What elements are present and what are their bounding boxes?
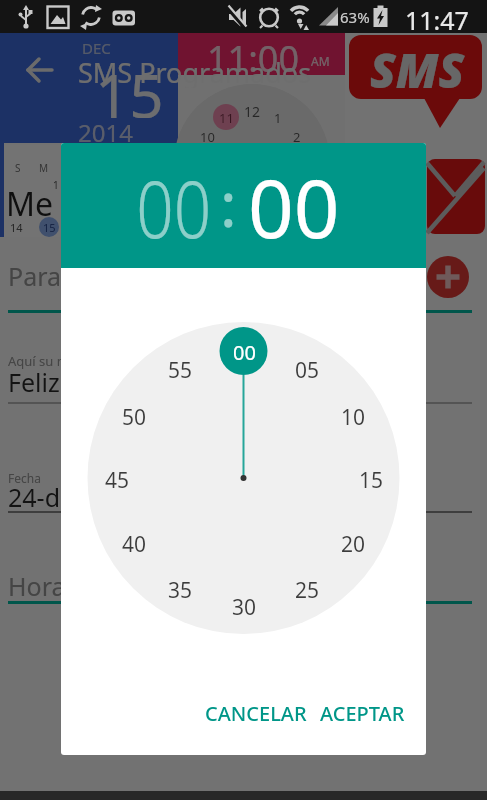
staticText: SMS [370, 38, 465, 92]
staticText: 25 [295, 576, 320, 600]
staticText: 11:00 [207, 34, 300, 72]
staticText: 15 [43, 220, 56, 234]
button[interactable]: ACEPTAR [312, 695, 412, 731]
button[interactable]: CANCELAR [201, 695, 311, 731]
staticText: 55 [168, 356, 193, 380]
staticText: 1 [53, 178, 59, 190]
staticText: Feliz [8, 365, 60, 397]
staticText: 00 [248, 152, 340, 242]
staticText: 11 [219, 109, 234, 125]
staticText: 40 [122, 530, 147, 554]
staticText: 45 [105, 466, 130, 490]
staticText: 00 [136, 152, 212, 242]
staticText: 30 [232, 593, 257, 617]
staticText: S [15, 161, 21, 173]
staticText: 15 [95, 54, 164, 118]
staticText: 63% [340, 7, 370, 27]
staticText: 15 [359, 466, 384, 490]
staticText: 24-d [8, 480, 61, 512]
staticText: SMS Programados [78, 54, 312, 88]
staticText: 35 [168, 576, 193, 600]
staticText: DEC [82, 38, 111, 56]
staticText: M [39, 161, 49, 173]
button[interactable] [427, 256, 469, 298]
staticText: 14 [10, 220, 23, 234]
staticText: Fecha [8, 470, 41, 486]
staticText: Para [8, 259, 62, 291]
staticText: 20 [341, 530, 366, 554]
staticText: 2 [293, 128, 301, 144]
staticText: CANCELAR [205, 700, 307, 727]
staticText: 00 [233, 339, 256, 363]
staticText: 05 [295, 356, 320, 380]
staticText: : [220, 161, 237, 245]
staticText: 12 [244, 102, 261, 118]
staticText: 10 [200, 128, 215, 144]
staticText: 10 [341, 403, 366, 427]
staticText: Me [6, 182, 54, 218]
staticText: Hora [8, 569, 66, 601]
staticText: Aquí su m [8, 352, 69, 370]
staticText: 2014 [78, 116, 133, 142]
staticText: 11:47 [405, 3, 469, 31]
staticText: 50 [122, 403, 147, 427]
staticText: 1 [274, 109, 282, 125]
staticText: AM [311, 53, 330, 67]
button[interactable] [20, 55, 60, 85]
staticText: ACEPTAR [320, 700, 405, 727]
